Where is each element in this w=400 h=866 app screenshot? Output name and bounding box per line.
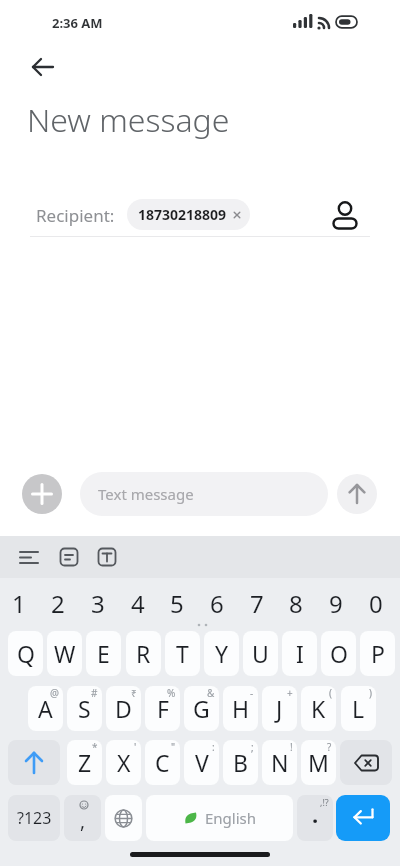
button[interactable]: J	[262, 686, 297, 731]
button[interactable]	[92, 542, 122, 572]
staticText: #	[91, 686, 98, 700]
staticText: 1	[12, 587, 26, 620]
staticText: ?	[327, 740, 332, 754]
button[interactable]: X	[106, 740, 141, 785]
button[interactable]: U	[243, 631, 278, 676]
staticText: J	[276, 693, 283, 724]
staticText: K	[311, 693, 326, 724]
staticText: X	[117, 747, 131, 778]
button[interactable]	[54, 542, 84, 572]
staticText: -	[250, 686, 254, 700]
button[interactable]	[340, 740, 392, 785]
staticText: I	[296, 638, 304, 669]
staticText: 6	[210, 587, 224, 620]
button[interactable]: O	[321, 631, 356, 676]
button[interactable]: P	[360, 631, 395, 676]
staticText: T	[176, 638, 189, 669]
staticText: (	[329, 686, 332, 700]
button[interactable]: V	[184, 740, 219, 785]
button[interactable]	[8, 740, 60, 785]
staticText: 5	[170, 587, 184, 620]
button[interactable]: Text message	[80, 472, 328, 516]
button[interactable]: M	[301, 740, 336, 785]
staticText: '	[134, 740, 137, 754]
button[interactable]: H	[223, 686, 258, 731]
button[interactable]: Z	[67, 740, 102, 785]
button[interactable]: 7	[237, 586, 277, 620]
button[interactable]	[336, 795, 390, 841]
staticText: V	[195, 747, 209, 778]
button[interactable]: C	[145, 740, 180, 785]
button[interactable]	[105, 795, 142, 841]
button[interactable]: Y	[204, 631, 239, 676]
button[interactable]: ?123	[8, 795, 60, 841]
staticText: H	[232, 693, 250, 724]
staticText: D	[115, 693, 132, 724]
staticText: F	[157, 693, 169, 724]
staticText: *	[92, 740, 98, 754]
staticText: Text message	[98, 484, 194, 504]
staticText: Recipient:	[36, 204, 115, 227]
button[interactable]: 6	[197, 586, 237, 620]
button[interactable]: 2	[38, 586, 78, 620]
staticText: )	[369, 686, 372, 700]
button[interactable]: A	[28, 686, 63, 731]
button[interactable]: .	[297, 795, 333, 841]
staticText: &	[207, 686, 215, 700]
button[interactable]	[337, 474, 377, 514]
staticText: +	[287, 686, 293, 700]
button[interactable]: G	[184, 686, 219, 731]
staticText: "	[171, 740, 176, 754]
staticText: 9	[329, 587, 343, 620]
staticText: !	[290, 740, 293, 754]
button[interactable]: 8	[276, 586, 316, 620]
button[interactable]: T	[165, 631, 200, 676]
button[interactable]	[22, 50, 64, 84]
button[interactable]: English	[146, 795, 293, 841]
staticText: ;	[251, 740, 254, 754]
staticText: 2:36 AM	[52, 14, 103, 32]
button[interactable]: K	[301, 686, 336, 731]
button[interactable]: ,	[64, 795, 101, 841]
staticText: 8	[289, 587, 303, 620]
staticText: O	[330, 638, 348, 669]
staticText: Q	[17, 638, 35, 669]
staticText: ,!?	[320, 796, 329, 808]
button[interactable]: 0	[356, 586, 396, 620]
button[interactable]: S	[67, 686, 102, 731]
button[interactable]: E	[86, 631, 121, 676]
button[interactable]: B	[223, 740, 258, 785]
staticText: U	[252, 638, 269, 669]
button[interactable]: 9	[316, 586, 356, 620]
button[interactable]: N	[262, 740, 297, 785]
staticText: 4	[131, 587, 145, 620]
staticText: %	[167, 686, 176, 700]
button[interactable]	[14, 542, 44, 572]
staticText: P	[371, 638, 385, 669]
button[interactable]: D	[106, 686, 141, 731]
button[interactable]: 1	[0, 586, 39, 620]
button[interactable]	[22, 474, 62, 514]
staticText: Y	[215, 638, 229, 669]
staticText: A	[38, 693, 53, 724]
staticText: 18730218809	[138, 205, 227, 224]
button[interactable]: 4	[118, 586, 158, 620]
button[interactable]: Q	[8, 631, 43, 676]
staticText: W	[54, 638, 76, 669]
button[interactable]: R	[126, 631, 161, 676]
staticText: 0	[369, 587, 383, 620]
button[interactable]	[329, 198, 361, 232]
staticText: C	[155, 747, 170, 778]
staticText: Z	[78, 747, 92, 778]
button[interactable]: 5	[157, 586, 197, 620]
button[interactable]: I	[282, 631, 317, 676]
button[interactable]: F	[145, 686, 180, 731]
button[interactable]: 18730218809	[127, 199, 250, 230]
staticText: ,	[80, 808, 86, 834]
button[interactable]: W	[47, 631, 82, 676]
button[interactable]: 3	[78, 586, 118, 620]
staticText: R	[136, 638, 151, 669]
staticText: L	[352, 693, 365, 724]
staticText: :	[212, 740, 215, 754]
button[interactable]: L	[341, 686, 376, 731]
